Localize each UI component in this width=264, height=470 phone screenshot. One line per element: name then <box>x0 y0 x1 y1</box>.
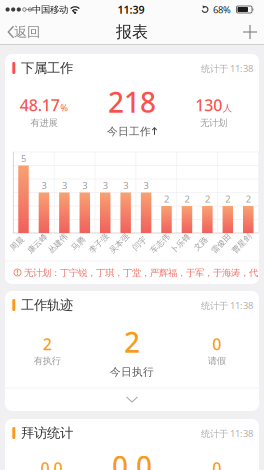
staticText: 请假 <box>208 355 226 367</box>
staticText: 3 <box>123 179 128 192</box>
staticText: 康云峰 <box>25 239 49 248</box>
staticText: 0.0 <box>40 457 62 470</box>
staticText: 2 <box>225 193 230 205</box>
staticText: 闫宇 <box>132 239 148 248</box>
staticText: 130 <box>195 94 222 116</box>
staticText: 报表 <box>116 22 148 42</box>
staticText: 车志伟 <box>148 239 172 248</box>
staticText: 2 <box>124 323 140 361</box>
staticText: 拜访统计 <box>21 425 73 441</box>
staticText: 有进展 <box>30 117 57 129</box>
staticText: 2 <box>205 193 210 205</box>
staticText: 2 <box>246 193 251 205</box>
staticText: ! <box>16 268 18 277</box>
staticText: 统计于 11:38 <box>201 62 253 75</box>
staticText: 文路 <box>193 239 209 248</box>
staticText: 218 <box>108 83 156 121</box>
staticText: % <box>60 101 68 114</box>
staticText: 返回 <box>14 24 40 40</box>
button[interactable] <box>5 388 259 410</box>
staticText: 0.0 <box>112 447 152 470</box>
staticText: 48.17 <box>20 94 60 116</box>
staticText: 周晨 <box>9 239 25 248</box>
staticText: 2 <box>184 193 189 205</box>
staticText: 雷俊田 <box>209 239 233 248</box>
button[interactable]: 返回 <box>0 20 44 44</box>
staticText: 2 <box>43 333 52 355</box>
staticText: 下属工作 <box>21 60 73 76</box>
staticText: 0 <box>212 457 221 470</box>
staticText: 有执行 <box>34 355 61 367</box>
staticText: 无计划：丁宁锐，丁琪，丁堂，严辉福，于军，于海涛，代 <box>24 267 258 279</box>
staticText: 丛建伟 <box>46 239 70 248</box>
staticText: 3 <box>41 179 46 192</box>
staticText: 2 <box>164 193 169 205</box>
staticText: 今日工作 <box>107 125 151 138</box>
staticText: 今日执行 <box>110 365 154 378</box>
staticText: 吴本强 <box>107 239 131 248</box>
staticText: 无计划 <box>200 117 227 129</box>
staticText: 曹星剑 <box>230 239 254 248</box>
staticText: 3 <box>82 179 87 192</box>
staticText: 0 <box>212 333 221 355</box>
staticText: 68% <box>213 3 231 16</box>
staticText: 统计于 11:38 <box>201 299 253 312</box>
staticText: 3 <box>144 179 149 192</box>
staticText: 11:39 <box>117 2 144 17</box>
staticText: 马腾 <box>70 239 86 248</box>
staticText: 人 <box>223 102 232 114</box>
button[interactable]: ! <box>5 261 259 283</box>
staticText: 卜乐锋 <box>168 239 192 248</box>
staticText: 统计于 11:38 <box>201 427 253 440</box>
staticText: 5 <box>21 152 26 165</box>
button[interactable] <box>238 20 262 44</box>
staticText: 李子强 <box>87 239 111 248</box>
staticText: 3 <box>103 179 108 192</box>
staticText: 3 <box>62 179 67 192</box>
staticText: 中国移动 <box>32 4 68 15</box>
staticText: 工作轨迹 <box>21 297 73 313</box>
